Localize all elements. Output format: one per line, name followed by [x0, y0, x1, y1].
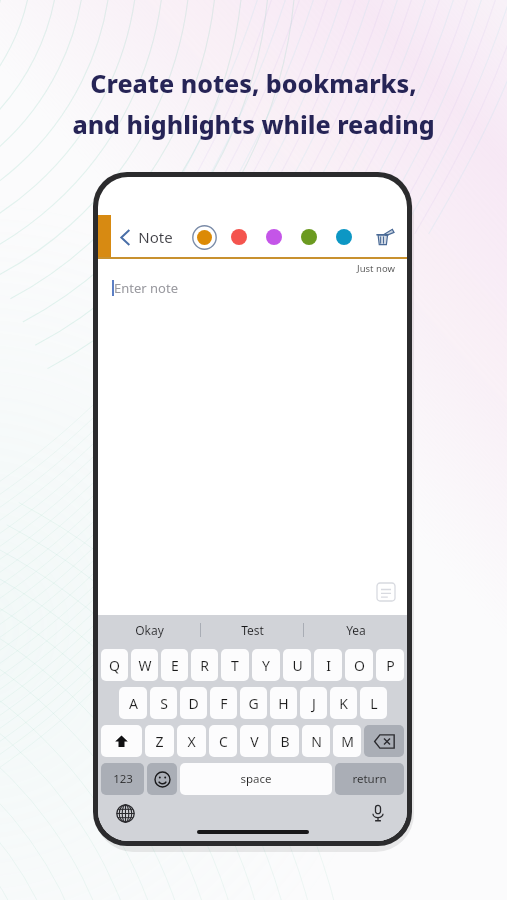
button[interactable]: Dictation	[365, 800, 391, 826]
button[interactable]: F	[210, 687, 237, 719]
button[interactable]: H	[270, 687, 297, 719]
button[interactable]: C	[209, 725, 237, 757]
staticText: D	[188, 694, 199, 713]
button[interactable]: J	[300, 687, 327, 719]
staticText: H	[278, 694, 289, 713]
button[interactable]: X	[177, 725, 206, 757]
staticText: Test	[241, 622, 264, 638]
button[interactable]: P	[376, 649, 404, 681]
staticText: Q	[109, 656, 120, 675]
staticText: X	[187, 732, 196, 751]
staticText: Z	[155, 732, 164, 751]
button[interactable]: W	[131, 649, 158, 681]
staticText: W	[138, 656, 152, 675]
button[interactable]: E	[161, 649, 188, 681]
button[interactable]: S	[150, 687, 177, 719]
button[interactable]: Okay	[98, 615, 201, 645]
button[interactable]: A	[119, 687, 147, 719]
staticText: Yea	[346, 622, 366, 638]
button[interactable]: Resize editor	[377, 583, 395, 601]
button[interactable]: G	[240, 687, 267, 719]
button[interactable]: 123	[101, 763, 144, 795]
button[interactable]: Delete note	[366, 220, 400, 254]
button[interactable]: space	[180, 763, 332, 795]
button[interactable]: L	[360, 687, 387, 719]
staticText: Okay	[135, 622, 164, 638]
staticText: and highlights while reading	[72, 107, 435, 141]
staticText: K	[339, 694, 348, 713]
button[interactable]: T	[221, 649, 249, 681]
button[interactable]: Q	[101, 649, 128, 681]
staticText: O	[354, 656, 365, 675]
staticText: L	[370, 694, 378, 713]
button[interactable]: O	[345, 649, 373, 681]
staticText: Note	[138, 227, 173, 247]
button[interactable]: K	[330, 687, 357, 719]
button[interactable]: U	[283, 649, 311, 681]
staticText: R	[200, 656, 209, 675]
button[interactable]: Colour 5	[331, 224, 357, 250]
button[interactable]: Colour 4	[296, 224, 322, 250]
staticText: G	[248, 694, 259, 713]
button[interactable]: Change keyboard language	[112, 800, 138, 826]
staticText: B	[280, 732, 290, 751]
button[interactable]: N	[302, 725, 330, 757]
button[interactable]: Colour 2	[226, 224, 252, 250]
button[interactable]: B	[271, 725, 299, 757]
staticText: Just now	[357, 262, 395, 275]
button[interactable]: Emoji	[147, 763, 177, 795]
button[interactable]: Colour 1	[191, 224, 217, 250]
button[interactable]: D	[180, 687, 207, 719]
staticText: M	[341, 732, 354, 751]
staticText: return	[352, 771, 387, 787]
staticText: Enter note	[114, 279, 178, 297]
button[interactable]: Note	[116, 223, 177, 251]
staticText: E	[171, 656, 179, 675]
staticText: A	[129, 694, 138, 713]
staticText: I	[326, 656, 331, 675]
button[interactable]: Z	[145, 725, 174, 757]
staticText: J	[312, 694, 316, 713]
button[interactable]: Y	[252, 649, 280, 681]
staticText: F	[220, 694, 228, 713]
button[interactable]: V	[240, 725, 268, 757]
staticText: V	[250, 732, 259, 751]
button[interactable]: I	[314, 649, 342, 681]
staticText: P	[386, 656, 395, 675]
staticText: space	[240, 771, 272, 787]
staticText: S	[160, 694, 168, 713]
staticText: C	[219, 732, 228, 751]
staticText: T	[231, 656, 239, 675]
button[interactable]: Backspace	[364, 725, 404, 757]
button[interactable]: return	[335, 763, 404, 795]
staticText: 123	[113, 771, 133, 787]
button[interactable]: R	[191, 649, 218, 681]
staticText: Create notes, bookmarks,	[90, 66, 417, 100]
button[interactable]: Colour 3	[261, 224, 287, 250]
staticText: U	[292, 656, 303, 675]
button[interactable]: Yea	[304, 615, 407, 645]
button[interactable]: Test	[201, 615, 304, 645]
staticText: Y	[262, 656, 270, 675]
button[interactable]: Shift	[101, 725, 142, 757]
staticText: N	[311, 732, 322, 751]
button[interactable]: M	[333, 725, 361, 757]
